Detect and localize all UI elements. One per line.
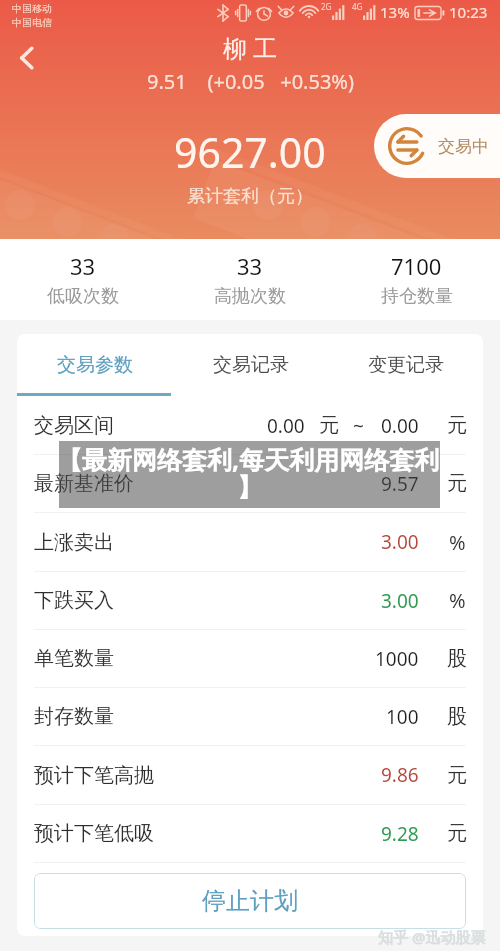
staticText: 封存数量 [34,704,114,729]
staticText: 0.00 [381,413,419,439]
staticText: 13% [380,2,410,22]
staticText: 预计下笔低吸 [34,821,154,846]
staticText: 股 [447,646,467,671]
staticText: 交易参数 [57,353,133,377]
staticText: 9.57 [381,471,419,497]
staticText: 停止计划 [202,886,298,916]
staticText: 变更记录 [368,353,444,377]
button[interactable]: 最新基准价 [17,455,483,512]
button[interactable]: 预计下笔高抛 [17,746,483,804]
staticText: 元 [447,471,467,496]
button[interactable]: 停止计划 [34,873,466,929]
staticText: 9.86 [381,762,419,788]
button[interactable]: 交易参数 [17,334,173,395]
staticText: 10:23 [449,2,488,22]
button[interactable]: 单笔数量 [17,630,483,687]
button[interactable]: 交易记录 [173,334,328,395]
staticText: 预计下笔高抛 [34,763,154,788]
staticText: 元 [447,763,467,788]
staticText: 9.28 [381,821,419,847]
button[interactable]: 封存数量 [17,688,483,745]
button[interactable]: 交易中 [374,114,500,178]
staticText: 0.00 [267,413,305,439]
staticText: 元 [319,413,339,438]
button[interactable]: 预计下笔低吸 [17,805,483,862]
button[interactable]: 变更记录 [328,334,483,395]
staticText: 1000 [375,646,419,672]
staticText: 元 [447,821,467,846]
staticText: % [449,529,466,556]
staticText: 3.00 [381,588,419,614]
staticText: 交易中 [438,136,489,157]
button[interactable]: 33 [166,251,333,308]
staticText: % [449,587,466,614]
staticText: ~ [353,413,364,439]
staticText: 【最新网络套利,每天利用网络套利 [57,442,457,476]
button[interactable]: 33 [0,251,166,308]
staticText: 柳 工 [223,31,278,64]
staticText: 高抛次数 [214,285,286,308]
staticText: 33 [70,251,96,281]
staticText: 3.00 [381,529,419,555]
staticText: 交易区间 [34,413,114,438]
staticText: 9627.00 [174,124,326,180]
button[interactable]: 交易区间 [17,397,483,454]
staticText: 下跌买入 [34,588,114,613]
staticText: 累计套利（元） [187,185,313,208]
staticText: 股 [447,704,467,729]
staticText: 2G [321,1,332,12]
staticText: 中国移动 [12,2,52,15]
staticText: 7100 [391,251,442,281]
staticText: 4G [352,1,363,12]
button[interactable]: 上涨卖出 [17,513,483,571]
staticText: 交易记录 [213,353,289,377]
staticText: 33 [237,251,263,281]
staticText: 元 [447,413,467,438]
staticText: 9.51 (+0.05 +0.53%) [147,68,354,95]
staticText: 】 [237,472,262,503]
button[interactable]: 7100 [333,251,500,308]
staticText: 低吸次数 [47,285,119,308]
staticText: 上涨卖出 [34,530,114,555]
staticText: 中国电信 [12,16,52,29]
staticText: 最新基准价 [34,471,134,496]
staticText: 知乎 @迅动股票 [378,927,486,947]
staticText: 持仓数量 [381,285,453,308]
button[interactable]: 下跌买入 [17,572,483,629]
staticText: 100 [386,704,419,730]
staticText: 单笔数量 [34,646,114,671]
button[interactable]: Back [7,38,47,78]
